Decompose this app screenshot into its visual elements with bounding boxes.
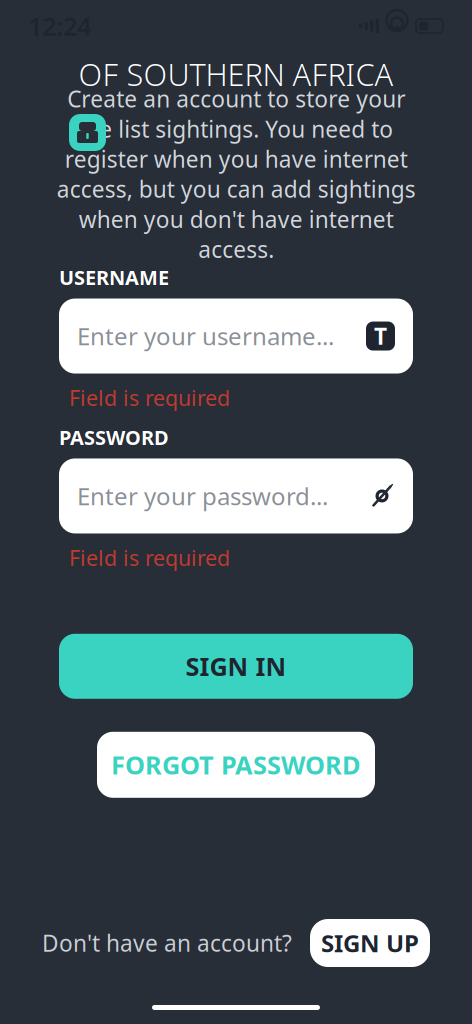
staticText: Field is required [69, 384, 230, 412]
staticText: Create an account to store your life lis… [56, 84, 415, 264]
staticText: T [374, 321, 387, 351]
button[interactable]: SIGN IN [59, 634, 413, 699]
staticText: Don't have an account? [42, 928, 292, 958]
staticText: SIGN IN [185, 649, 286, 683]
button[interactable]: Enter your username... [59, 299, 413, 374]
staticText: PASSWORD [59, 424, 169, 450]
button[interactable]: SIGN UP [310, 919, 430, 967]
button[interactable]: FORGOT PASSWORD [97, 732, 375, 798]
staticText: USERNAME [59, 264, 169, 291]
staticText: FORGOT PASSWORD [111, 748, 361, 782]
staticText: Field is required [69, 543, 230, 572]
staticText: OF SOUTHERN AFRICA [78, 54, 393, 94]
staticText: Enter your password... [77, 480, 328, 512]
staticText: Enter your username... [77, 320, 334, 352]
staticText: SIGN UP [321, 927, 419, 959]
staticText: 12:24 [28, 9, 91, 43]
button[interactable]: Enter your password... [59, 458, 413, 533]
